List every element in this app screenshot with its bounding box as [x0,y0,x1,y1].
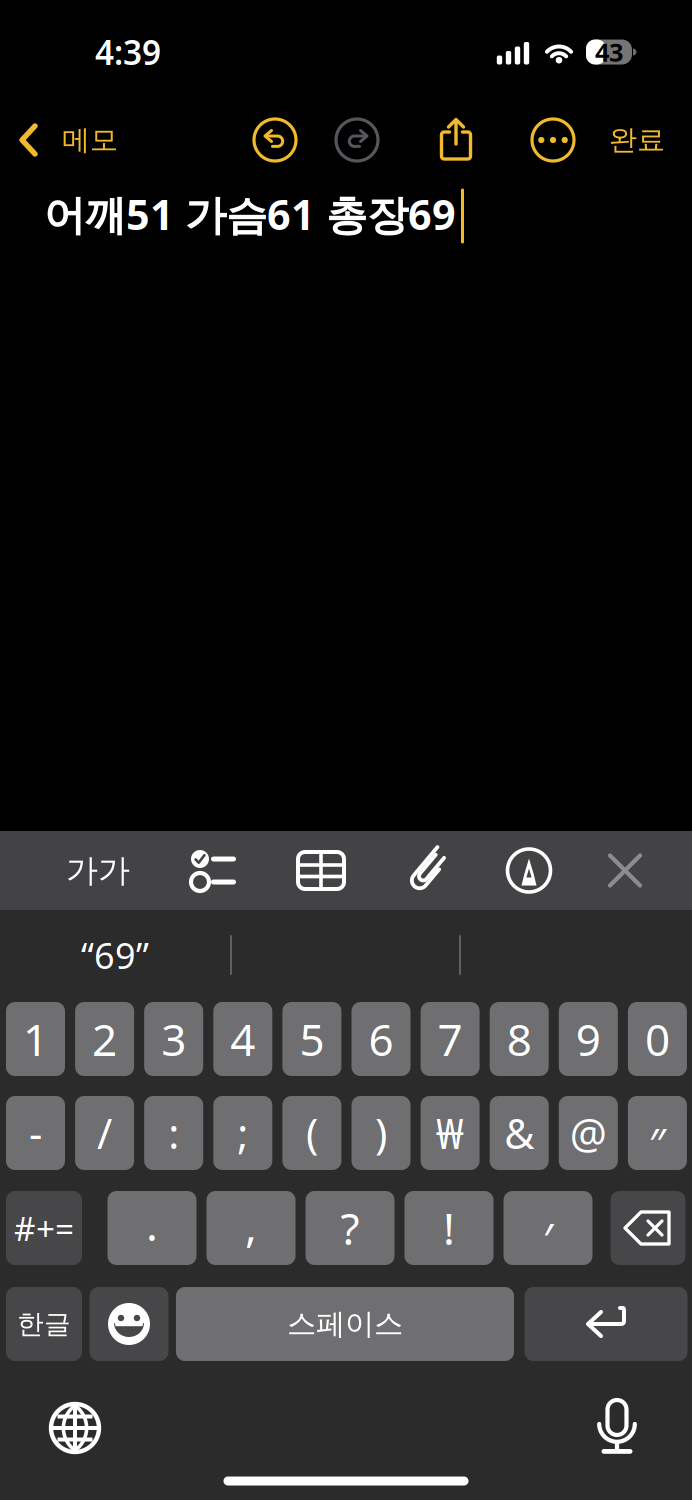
button[interactable]: 3 [144,1002,203,1076]
button[interactable]: ₩ [421,1096,480,1170]
staticText: ? [340,1199,359,1257]
staticText: 2 [92,1010,117,1068]
button[interactable]: Delete [610,1191,685,1265]
staticText: - [29,1106,42,1160]
staticText: 9 [576,1010,601,1068]
button[interactable]: ″ [628,1096,687,1170]
button[interactable]: 0 [628,1002,687,1076]
staticText: . [146,1195,158,1253]
staticText: 0 [645,1010,670,1068]
staticText: 43 [595,35,623,69]
staticText: ″ [649,1116,666,1170]
staticText: ′ [543,1209,553,1267]
button[interactable]: 2 [75,1002,134,1076]
button[interactable]: Undo [251,116,299,164]
staticText: & [504,1106,534,1160]
button[interactable]: . [107,1191,196,1265]
button[interactable]: ? [305,1191,394,1265]
staticText: 7 [438,1010,463,1068]
button[interactable]: Return [524,1287,687,1361]
button[interactable]: Hide keyboard [575,831,675,910]
button[interactable]: ( [282,1096,341,1170]
staticText: 메모 [62,123,118,157]
staticText: 8 [507,1010,532,1068]
staticText: ; [237,1106,248,1160]
button[interactable]: Next keyboard [30,1388,120,1468]
button[interactable]: 가가 [48,831,148,910]
staticText: ) [375,1106,387,1160]
button[interactable]: 한글 [6,1287,82,1361]
staticText: 스페이스 [287,1306,403,1342]
staticText: “69” [81,931,149,979]
button[interactable]: 스페이스 [176,1287,514,1361]
button[interactable]: : [144,1096,203,1170]
button[interactable]: Emoji [89,1287,168,1361]
button[interactable]: ! [404,1191,493,1265]
button[interactable]: , [206,1191,295,1265]
button[interactable]: Checklist [162,831,262,910]
button[interactable]: ) [351,1096,410,1170]
button[interactable]: Share [436,115,476,163]
button[interactable]: @ [559,1096,618,1170]
button[interactable]: Table [271,831,371,910]
button[interactable]: ′ [503,1191,592,1265]
button[interactable]: 5 [282,1002,341,1076]
button[interactable]: / [75,1096,134,1170]
button[interactable]: 메모 [17,95,157,185]
staticText: : [168,1106,179,1160]
staticText: 가가 [66,851,130,890]
staticText: #+= [14,1206,74,1250]
staticText: / [97,1106,112,1160]
button[interactable]: 9 [559,1002,618,1076]
button[interactable]: Dictation [572,1388,662,1468]
staticText: 완료 [609,123,665,157]
button[interactable]: #+= [6,1191,82,1265]
staticText: 4:39 [95,30,161,74]
staticText: , [245,1196,257,1254]
button[interactable]: - [6,1096,65,1170]
staticText: ( [306,1106,318,1160]
button[interactable]: ; [213,1096,272,1170]
staticText: 3 [161,1010,186,1068]
button[interactable]: Markup [479,831,579,910]
button[interactable]: “69” [0,910,230,1000]
button[interactable]: 4 [213,1002,272,1076]
staticText: ! [443,1199,455,1257]
staticText: 어깨51 가슴61 총장69 [44,186,456,241]
staticText: 4 [230,1010,255,1068]
staticText: ₩ [436,1106,464,1160]
button[interactable]: 1 [6,1002,65,1076]
button[interactable]: Redo [333,116,381,164]
staticText: 한글 [17,1308,71,1340]
staticText: @ [570,1106,607,1160]
button[interactable]: More [529,116,577,164]
staticText: 5 [299,1010,324,1068]
button[interactable]: 8 [490,1002,549,1076]
button[interactable]: 완료 [582,95,692,185]
staticText: 6 [368,1010,393,1068]
button[interactable]: Attach file [378,831,478,910]
button[interactable]: & [490,1096,549,1170]
button[interactable]: 6 [351,1002,410,1076]
button[interactable]: 7 [421,1002,480,1076]
staticText: 1 [23,1010,48,1068]
